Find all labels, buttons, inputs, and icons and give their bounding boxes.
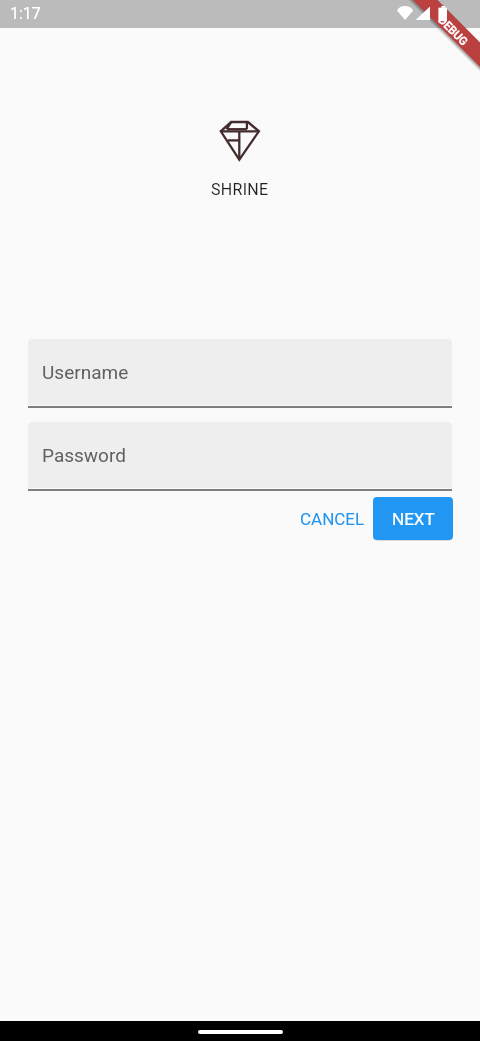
- staticText: 1:17: [10, 4, 41, 23]
- staticText: NEXT: [392, 509, 435, 529]
- button[interactable]: Password: [28, 422, 452, 488]
- button[interactable]: CANCEL: [285, 500, 380, 538]
- staticText: Password: [42, 444, 126, 466]
- staticText: SHRINE: [211, 180, 269, 199]
- staticText: Username: [42, 361, 129, 383]
- other: Wi-Fi: [397, 5, 415, 22]
- button[interactable]: NEXT: [373, 497, 453, 540]
- other: Battery: [438, 5, 450, 23]
- button[interactable]: Username: [28, 339, 452, 405]
- other: Mobile signal: [415, 6, 432, 22]
- staticText: CANCEL: [300, 509, 365, 529]
